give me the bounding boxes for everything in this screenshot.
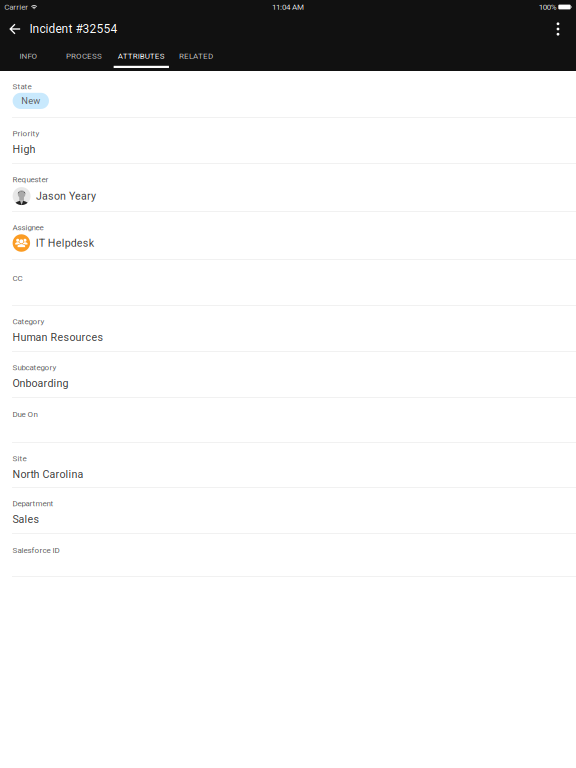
staticText: Department bbox=[13, 499, 54, 508]
staticText: Site bbox=[13, 454, 27, 463]
button[interactable]: RELATED bbox=[176, 44, 216, 71]
button[interactable]: Category bbox=[0, 306, 576, 351]
staticText: 11:04 AM bbox=[272, 2, 304, 12]
staticText: New bbox=[21, 95, 40, 106]
staticText: PROCESS bbox=[66, 51, 102, 61]
staticText: INFO bbox=[20, 51, 38, 61]
staticText: Carrier bbox=[4, 2, 28, 12]
button[interactable]: Department bbox=[0, 488, 576, 533]
staticText: Salesforce ID bbox=[13, 545, 60, 555]
staticText: Sales bbox=[13, 513, 40, 526]
button[interactable]: Priority bbox=[0, 118, 576, 163]
button[interactable]: PROCESS bbox=[63, 44, 105, 71]
staticText: Subcategory bbox=[13, 363, 57, 372]
staticText: IT Helpdesk bbox=[36, 237, 94, 249]
button[interactable]: INFO bbox=[15, 44, 43, 71]
staticText: RELATED bbox=[179, 51, 213, 61]
staticText: CC bbox=[13, 273, 23, 283]
staticText: Human Resources bbox=[13, 331, 104, 344]
button[interactable]: Assignee bbox=[0, 212, 576, 259]
staticText: State bbox=[13, 82, 32, 91]
button[interactable]: Salesforce ID bbox=[0, 534, 576, 576]
button[interactable]: Due On bbox=[0, 398, 576, 442]
button[interactable]: More options bbox=[545, 14, 571, 44]
staticText: Incident #32554 bbox=[30, 22, 118, 36]
button[interactable]: Back bbox=[4, 14, 26, 44]
staticText: Requester bbox=[13, 175, 49, 184]
button[interactable]: Subcategory bbox=[0, 352, 576, 397]
staticText: North Carolina bbox=[13, 468, 84, 481]
staticText: Onboarding bbox=[13, 377, 69, 390]
staticText: 100% bbox=[539, 2, 557, 12]
button[interactable]: State bbox=[0, 71, 576, 117]
staticText: High bbox=[13, 143, 36, 156]
button[interactable]: Site bbox=[0, 443, 576, 487]
staticText: Assignee bbox=[13, 223, 44, 232]
staticText: Priority bbox=[13, 129, 40, 138]
staticText: Due On bbox=[13, 409, 38, 419]
button[interactable]: Requester bbox=[0, 164, 576, 211]
staticText: ATTRIBUTES bbox=[118, 51, 165, 61]
staticText: Category bbox=[13, 317, 45, 326]
button[interactable]: ATTRIBUTES bbox=[114, 44, 169, 71]
staticText: Jason Yeary bbox=[36, 190, 96, 202]
